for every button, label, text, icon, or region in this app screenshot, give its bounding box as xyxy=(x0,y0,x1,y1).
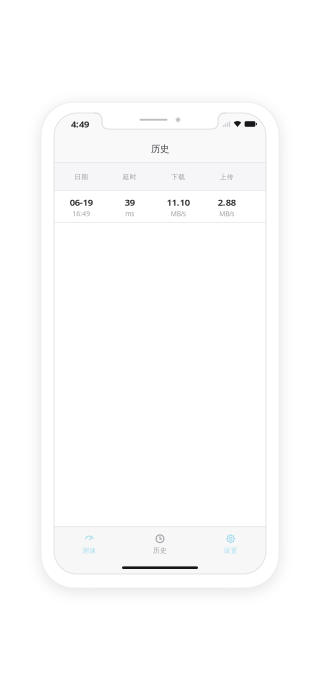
staticText: 39 xyxy=(125,196,135,208)
button[interactable]: 历史 xyxy=(125,526,195,557)
staticText: 日期 xyxy=(74,173,88,181)
staticText: 上传 xyxy=(220,173,234,181)
staticText: 11.10 xyxy=(167,196,190,208)
staticText: 06-19 xyxy=(70,196,93,208)
staticText: 延时 xyxy=(123,173,137,181)
staticText: MB/s xyxy=(219,209,234,218)
staticText: 下载 xyxy=(171,173,185,181)
staticText: 历史 xyxy=(151,143,169,155)
staticText: 4:49 xyxy=(71,118,89,130)
staticText: 2.88 xyxy=(218,196,236,208)
staticText: 历史 xyxy=(153,546,167,555)
staticText: ms xyxy=(125,209,134,218)
button[interactable]: 设置 xyxy=(195,526,266,557)
staticText: 16:49 xyxy=(72,209,90,218)
staticText: 测速 xyxy=(82,546,96,555)
staticText: MB/s xyxy=(171,209,186,218)
staticText: 设置 xyxy=(224,546,238,555)
button[interactable]: 06-19 xyxy=(54,191,266,223)
button[interactable]: 测速 xyxy=(54,526,125,557)
